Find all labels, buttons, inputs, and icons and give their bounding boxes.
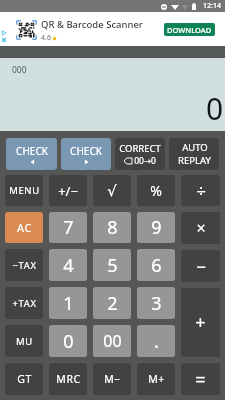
other: Close ad xyxy=(1,37,7,43)
staticText: MENU xyxy=(9,184,40,197)
button[interactable]: 5 xyxy=(93,249,131,281)
staticText: M− xyxy=(104,372,121,386)
staticText: CORRECT xyxy=(119,142,161,155)
button[interactable]: −TAX xyxy=(5,249,43,281)
button[interactable]: MU xyxy=(5,325,43,357)
staticText: √ xyxy=(107,182,117,199)
staticText: CHECK xyxy=(16,144,48,158)
button[interactable]: MRC xyxy=(49,363,87,395)
button[interactable]: 2 xyxy=(93,287,131,319)
button[interactable]: 00 xyxy=(93,325,131,357)
button[interactable]: + xyxy=(181,288,220,357)
staticText: 6 xyxy=(151,253,162,278)
button[interactable]: 1 xyxy=(49,287,87,319)
staticText: 000 xyxy=(12,64,27,76)
staticText: AC xyxy=(17,220,32,235)
button[interactable]: M+ xyxy=(137,363,175,395)
button[interactable]: ÷ xyxy=(181,175,220,206)
button[interactable]: 7 xyxy=(49,212,87,243)
button[interactable]: GT xyxy=(5,363,43,395)
button[interactable]: MENU xyxy=(5,175,43,206)
staticText: 0 xyxy=(63,329,74,354)
staticText: 4 xyxy=(63,253,74,278)
staticText: . xyxy=(154,329,159,354)
staticText: M+ xyxy=(148,372,165,386)
staticText: 00 xyxy=(103,330,122,352)
staticText: 0 xyxy=(206,88,224,129)
button[interactable]: DOWNLOAD xyxy=(164,23,215,36)
staticText: MU xyxy=(16,335,33,348)
staticText: 2 xyxy=(107,291,118,316)
button[interactable]: AC xyxy=(5,212,43,243)
staticText: 00→0 xyxy=(134,155,156,167)
other: Ad choices xyxy=(1,30,7,36)
staticText: DOWNLOAD xyxy=(167,25,212,35)
staticText: −TAX xyxy=(12,259,37,272)
button[interactable]: √ xyxy=(93,175,131,206)
button[interactable]: 4 xyxy=(49,249,87,281)
staticText: ÷ xyxy=(196,179,206,202)
staticText: MRC xyxy=(56,372,81,386)
staticText: GT xyxy=(17,372,32,386)
staticText: QR & Barcode Scanner xyxy=(41,18,143,31)
staticText: − xyxy=(196,255,206,278)
button[interactable]: 6 xyxy=(137,249,175,281)
button[interactable]: × xyxy=(181,212,220,244)
button[interactable]: − xyxy=(181,250,220,282)
button[interactable]: % xyxy=(137,175,175,206)
staticText: CHECK xyxy=(70,144,102,158)
staticText: 7 xyxy=(63,215,74,240)
staticText: AUTO xyxy=(182,141,208,154)
staticText: % xyxy=(150,181,162,200)
button[interactable]: M− xyxy=(93,363,131,395)
staticText: 1 xyxy=(63,291,74,316)
staticText: 8 xyxy=(107,215,118,240)
staticText: 4.6 xyxy=(41,33,51,43)
staticText: +/− xyxy=(58,182,78,200)
button[interactable]: . xyxy=(137,325,175,357)
staticText: 12:14 xyxy=(203,1,221,11)
staticText: = xyxy=(195,367,206,392)
staticText: 3 xyxy=(151,291,162,316)
staticText: + xyxy=(195,310,206,335)
button[interactable]: CHECK xyxy=(6,138,57,170)
button[interactable]: 0 xyxy=(49,325,87,357)
staticText: 9 xyxy=(151,215,162,240)
button[interactable]: CHECK xyxy=(61,138,111,170)
staticText: REPLAY xyxy=(178,154,211,167)
button[interactable]: +TAX xyxy=(5,287,43,319)
button[interactable]: 9 xyxy=(137,212,175,243)
staticText: +TAX xyxy=(12,297,37,310)
button[interactable]: CORRECT xyxy=(115,138,165,170)
button[interactable]: 8 xyxy=(93,212,131,243)
button[interactable]: AUTO xyxy=(169,138,219,170)
button[interactable]: 3 xyxy=(137,287,175,319)
staticText: × xyxy=(196,217,206,239)
button[interactable]: +/− xyxy=(49,175,87,206)
button[interactable]: = xyxy=(181,363,220,395)
staticText: 5 xyxy=(107,253,118,278)
